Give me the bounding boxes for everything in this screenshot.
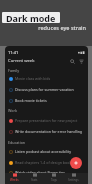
staticText: 11:41 [8, 50, 19, 55]
staticText: Prepare presentation for new project [15, 118, 78, 123]
button[interactable]: Search [68, 57, 77, 66]
staticText: reduces eye strain [26, 24, 86, 31]
button[interactable]: Stats [25, 173, 44, 182]
staticText: Dark mode [6, 12, 56, 23]
staticText: Book movie tickets [15, 98, 47, 103]
staticText: Movie class with kids [15, 76, 51, 81]
button[interactable]: Discuss plans for summer vacation [5, 84, 88, 95]
button[interactable]: Movie class with kids [5, 73, 88, 84]
staticText: Read chapters 1-4 of design book [15, 160, 72, 165]
button[interactable]: Prepare presentation for new project [5, 115, 88, 126]
staticText: Stats [31, 178, 38, 182]
staticText: Current week [8, 58, 35, 64]
button[interactable]: Book movie tickets [5, 95, 88, 106]
staticText: Write documentation for error handling [15, 129, 83, 134]
button[interactable]: Tags [44, 173, 63, 182]
button[interactable]: Settings [64, 173, 83, 182]
staticText: Education [8, 140, 26, 145]
staticText: Tags [51, 178, 57, 182]
button[interactable]: Weeks [5, 173, 24, 182]
staticText: Family [8, 68, 20, 73]
button[interactable]: Add task [70, 157, 82, 169]
button[interactable]: Listen podcast about accessibility [5, 146, 88, 157]
staticText: Weeks [10, 178, 19, 182]
staticText: Watch video about Figma tips [15, 170, 65, 175]
staticText: Discuss plans for summer vacation [15, 87, 74, 92]
button[interactable]: Write documentation for error handling [5, 126, 88, 137]
button[interactable]: Read chapters 1-4 of design book [5, 157, 88, 168]
button[interactable]: Watch video about Figma tips [5, 167, 88, 178]
staticText: Listen podcast about accessibility [15, 149, 72, 154]
button[interactable]: Filter [77, 57, 86, 66]
staticText: Work [8, 108, 18, 113]
staticText: Settings [68, 178, 79, 182]
